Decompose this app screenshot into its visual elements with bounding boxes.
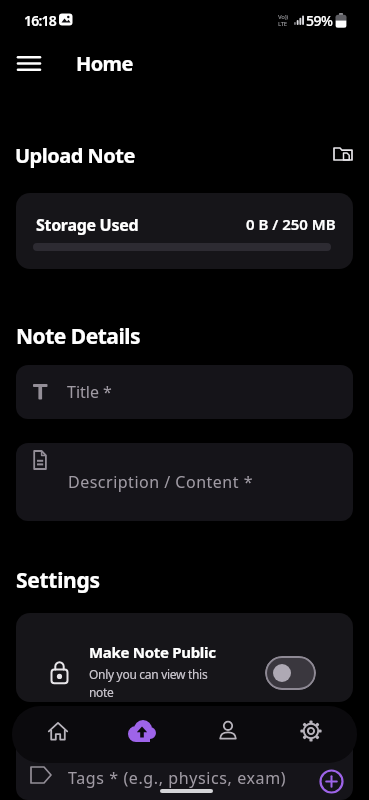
staticText: LTE	[278, 20, 287, 28]
button[interactable]	[287, 707, 335, 755]
staticText: Note Details	[16, 322, 140, 351]
staticText: Vo))	[278, 13, 288, 21]
button[interactable]	[16, 712, 353, 800]
button[interactable]	[318, 768, 345, 795]
staticText: Description / Content *	[68, 471, 253, 493]
button[interactable]	[265, 656, 316, 690]
staticText: Title *	[67, 381, 112, 403]
staticText: 16:18	[24, 11, 56, 30]
staticText: 0 B / 250 MB	[246, 214, 336, 234]
button[interactable]	[16, 443, 353, 521]
staticText: Storage Used	[36, 214, 139, 236]
button[interactable]	[204, 707, 252, 755]
button[interactable]	[8, 42, 50, 84]
staticText: Only you can view this note	[89, 666, 208, 697]
staticText: Home	[76, 50, 133, 77]
staticText: 59%	[306, 11, 333, 30]
staticText: Upload Note	[15, 142, 135, 169]
staticText: Settings	[16, 566, 100, 595]
button[interactable]	[16, 365, 353, 419]
staticText: Tags * (e.g., physics, exam)	[68, 767, 287, 789]
staticText: Make Note Public	[89, 642, 216, 662]
button[interactable]	[328, 140, 358, 168]
button[interactable]	[118, 707, 166, 755]
button[interactable]	[34, 707, 82, 755]
